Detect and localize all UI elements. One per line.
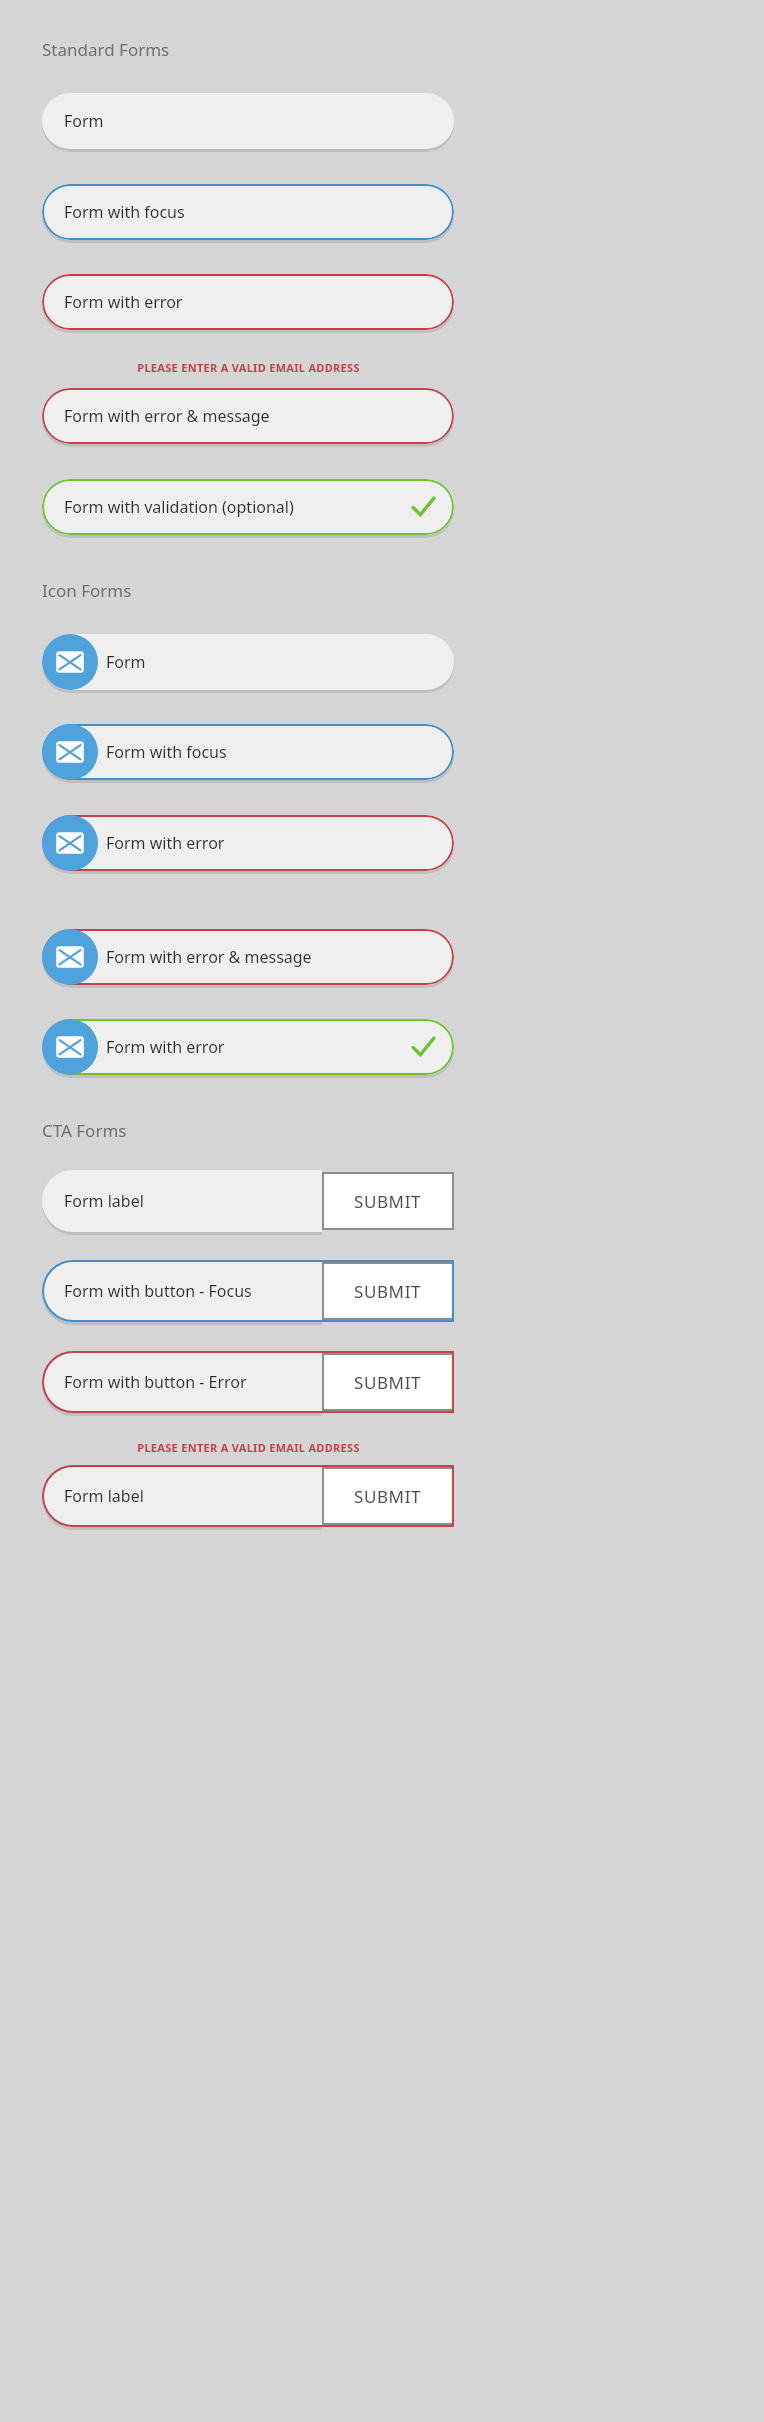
- staticText: Standard Forms: [42, 38, 170, 61]
- staticText: Form with error & message: [64, 405, 270, 427]
- button[interactable]: Form: [42, 634, 454, 690]
- button[interactable]: SUBMIT: [322, 1467, 454, 1525]
- staticText: Icon Forms: [42, 579, 132, 602]
- other: Valid: [410, 1034, 436, 1060]
- staticText: Form with button - Error: [64, 1371, 247, 1393]
- button[interactable]: Form label: [42, 1170, 454, 1232]
- staticText: CTA Forms: [42, 1119, 127, 1142]
- button[interactable]: Form with error: [42, 1019, 454, 1075]
- button[interactable]: Email: [42, 815, 98, 871]
- staticText: Form with error: [106, 832, 225, 854]
- staticText: Form with focus: [64, 201, 185, 223]
- button[interactable]: Form with validation (optional): [42, 479, 454, 535]
- staticText: PLEASE ENTER A VALID EMAIL ADDRESS: [137, 1440, 360, 1455]
- staticText: SUBMIT: [354, 1371, 422, 1394]
- other: Valid: [410, 494, 436, 520]
- button[interactable]: Email: [42, 634, 98, 690]
- staticText: Form: [106, 651, 146, 673]
- staticText: Form with error & message: [106, 946, 312, 968]
- staticText: Form with focus: [106, 741, 227, 763]
- button[interactable]: Form with focus: [42, 184, 454, 240]
- button[interactable]: Email: [42, 929, 98, 985]
- button[interactable]: Form: [42, 93, 454, 149]
- button[interactable]: Form with button - Error: [42, 1351, 454, 1413]
- button[interactable]: SUBMIT: [322, 1262, 454, 1320]
- button[interactable]: SUBMIT: [322, 1353, 454, 1411]
- button[interactable]: Form with button - Focus: [42, 1260, 454, 1322]
- staticText: Form with validation (optional): [64, 496, 294, 518]
- button[interactable]: Form with error & message: [42, 388, 454, 444]
- staticText: Form: [64, 110, 104, 132]
- staticText: Form label: [64, 1190, 144, 1212]
- button[interactable]: Form with error: [42, 274, 454, 330]
- button[interactable]: Form with focus: [42, 724, 454, 780]
- staticText: SUBMIT: [354, 1485, 422, 1508]
- button[interactable]: SUBMIT: [322, 1172, 454, 1230]
- button[interactable]: Email: [42, 724, 98, 780]
- staticText: SUBMIT: [354, 1190, 422, 1213]
- staticText: PLEASE ENTER A VALID EMAIL ADDRESS: [137, 360, 360, 375]
- staticText: Form with button - Focus: [64, 1280, 252, 1302]
- button[interactable]: Form with error & message: [42, 929, 454, 985]
- button[interactable]: Form label: [42, 1465, 454, 1527]
- staticText: Form with error: [64, 291, 183, 313]
- staticText: SUBMIT: [354, 1280, 422, 1303]
- button[interactable]: Form with error: [42, 815, 454, 871]
- button[interactable]: Email: [42, 1019, 98, 1075]
- staticText: Form label: [64, 1485, 144, 1507]
- staticText: Form with error: [106, 1036, 225, 1058]
